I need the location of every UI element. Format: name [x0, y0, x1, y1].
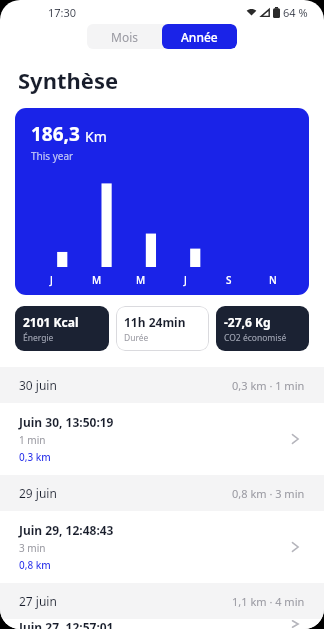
staticText: 30 juin [19, 377, 57, 393]
staticText: S [226, 273, 232, 287]
button[interactable]: 11h 24min [116, 306, 209, 351]
staticText: 11h 24min [124, 314, 186, 330]
button[interactable]: 2101 Kcal [15, 306, 109, 351]
staticText: 1,1 km · 4 min [232, 594, 305, 609]
staticText: 1 min [19, 433, 46, 447]
button[interactable]: 186,3 [15, 108, 309, 295]
staticText: Juin 30, 13:50:19 [19, 414, 114, 430]
staticText: 0,3 km [19, 450, 51, 464]
button[interactable]: Année [162, 24, 237, 49]
button[interactable]: Juin 29, 12:48:43 [0, 511, 324, 583]
staticText: 29 juin [19, 485, 57, 501]
staticText: J [50, 273, 53, 287]
staticText: 64 % [283, 5, 308, 20]
staticText: 0,8 km [19, 558, 51, 572]
staticText: 27 juin [19, 593, 57, 609]
staticText: 3 min [19, 541, 46, 555]
staticText: Durée [124, 332, 149, 344]
staticText: 2101 Kcal [23, 314, 79, 330]
button[interactable]: 29 juin [0, 475, 324, 511]
staticText: Juin 29, 12:48:43 [19, 522, 114, 538]
staticText: Année [181, 29, 218, 45]
staticText: 0,3 km · 1 min [232, 378, 305, 393]
staticText: CO2 économisé [224, 332, 287, 344]
staticText: J [184, 273, 187, 287]
button[interactable]: 30 juin [0, 367, 324, 403]
other: Détails [285, 537, 305, 557]
button[interactable]: Juin 30, 13:50:19 [0, 403, 324, 475]
staticText: 0,8 km · 3 min [232, 486, 305, 501]
button[interactable]: 27 juin [0, 583, 324, 619]
other: Détails [285, 619, 305, 629]
staticText: -27,6 Kg [224, 314, 271, 330]
staticText: Mois [111, 29, 138, 45]
staticText: Synthèse [18, 65, 119, 95]
button[interactable]: Juin 27, 12:57:01 [0, 619, 324, 629]
staticText: 186,3 [31, 121, 80, 147]
staticText: This year [31, 149, 74, 163]
button[interactable]: Mois [87, 24, 162, 49]
staticText: M [92, 273, 102, 287]
button[interactable]: -27,6 Kg [216, 306, 309, 351]
staticText: M [136, 273, 146, 287]
staticText: Énergie [23, 332, 54, 344]
staticText: Km [85, 127, 107, 146]
other: Détails [285, 429, 305, 449]
staticText: 17:30 [48, 5, 77, 20]
staticText: N [269, 273, 277, 287]
staticText: Juin 27, 12:57:01 [19, 619, 114, 629]
